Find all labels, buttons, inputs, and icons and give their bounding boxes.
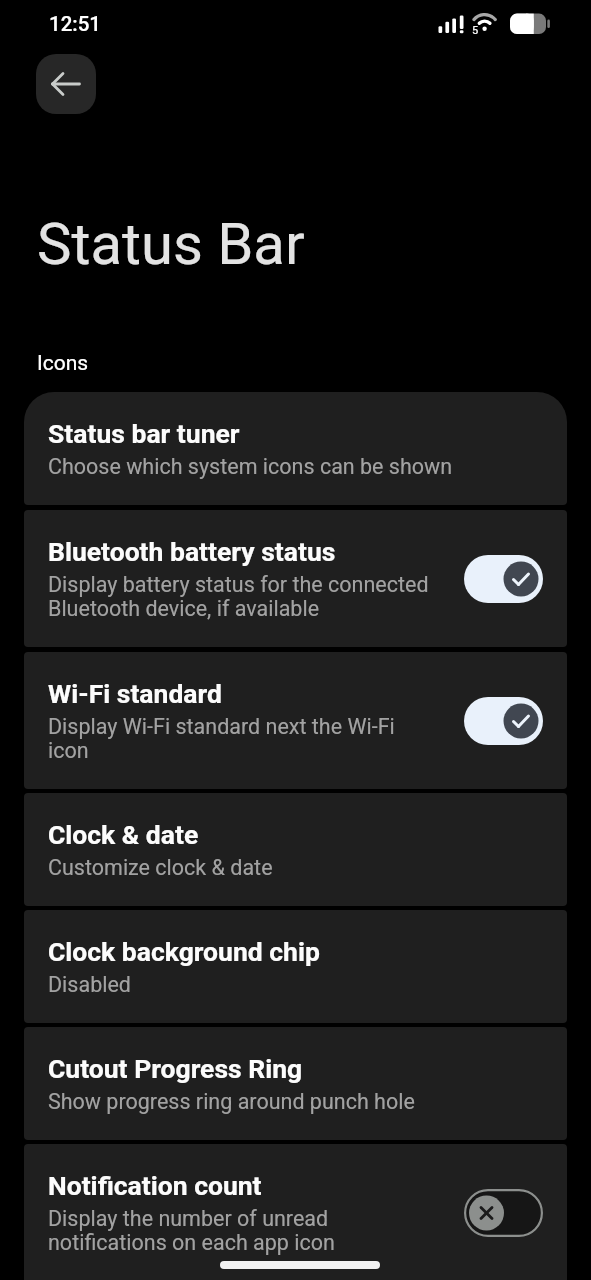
button[interactable]: Clock background chip xyxy=(24,910,567,1023)
staticText: Display the number of unread notificatio… xyxy=(48,1207,433,1255)
button[interactable]: Toggle on xyxy=(464,555,543,603)
staticText: Cutout Progress Ring xyxy=(48,1053,303,1084)
staticText: Disabled xyxy=(48,973,131,997)
staticText: Display battery status for the connected… xyxy=(48,573,433,621)
button[interactable]: Bluetooth battery status xyxy=(24,510,567,647)
staticText: Bluetooth battery status xyxy=(48,536,336,567)
button[interactable]: Wi-Fi standard xyxy=(24,652,567,789)
staticText: Icons xyxy=(37,351,89,376)
staticText: Clock & date xyxy=(48,819,199,850)
staticText: Display Wi-Fi standard next the Wi-Fi ic… xyxy=(48,715,433,763)
button[interactable]: Toggle on xyxy=(464,697,543,745)
button[interactable]: Notification count xyxy=(24,1144,567,1280)
button[interactable]: Clock & date xyxy=(24,793,567,906)
staticText: Clock background chip xyxy=(48,936,320,967)
staticText: Status bar tuner xyxy=(48,418,240,449)
button[interactable]: Toggle off xyxy=(464,1189,543,1237)
button[interactable]: Back xyxy=(36,54,96,114)
staticText: Wi-Fi standard xyxy=(48,678,222,709)
staticText: 5 xyxy=(472,24,479,37)
staticText: Customize clock & date xyxy=(48,856,273,880)
staticText: Choose which system icons can be shown xyxy=(48,455,453,479)
staticText: Show progress ring around punch hole xyxy=(48,1090,415,1114)
staticText: 12:51 xyxy=(49,12,102,36)
staticText: Status Bar xyxy=(37,210,305,278)
button[interactable]: Cutout Progress Ring xyxy=(24,1027,567,1140)
button[interactable]: Status bar tuner xyxy=(24,392,567,505)
staticText: Notification count xyxy=(48,1170,262,1201)
